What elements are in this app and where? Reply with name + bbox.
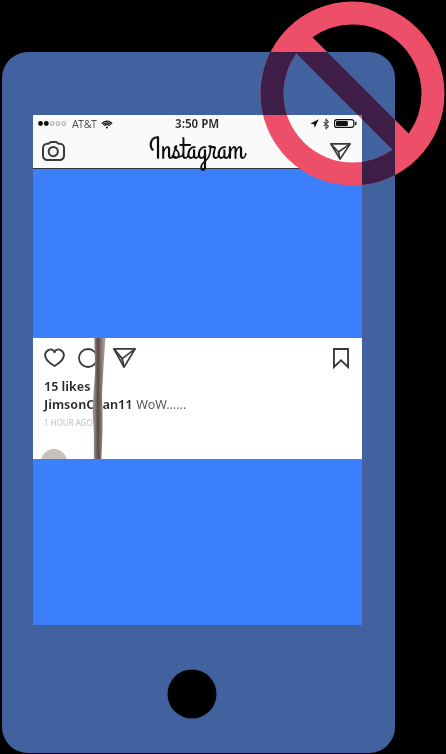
staticText: WoW...... — [133, 396, 187, 413]
button[interactable]: Share — [113, 348, 136, 368]
staticText: AT&T — [72, 117, 97, 132]
staticText: 1 HOUR AGO — [44, 417, 93, 428]
staticText: 3:50 PM — [175, 116, 220, 132]
button[interactable]: Direct messages — [330, 143, 351, 160]
staticText: 15 likes — [44, 378, 91, 395]
staticText: Instagram — [149, 130, 245, 171]
staticText: JimsonChan11 — [44, 396, 133, 413]
button[interactable]: Save — [333, 348, 349, 368]
button[interactable]: Comment — [78, 348, 98, 368]
button[interactable]: Like — [43, 348, 66, 367]
button[interactable]: Camera — [42, 141, 65, 161]
